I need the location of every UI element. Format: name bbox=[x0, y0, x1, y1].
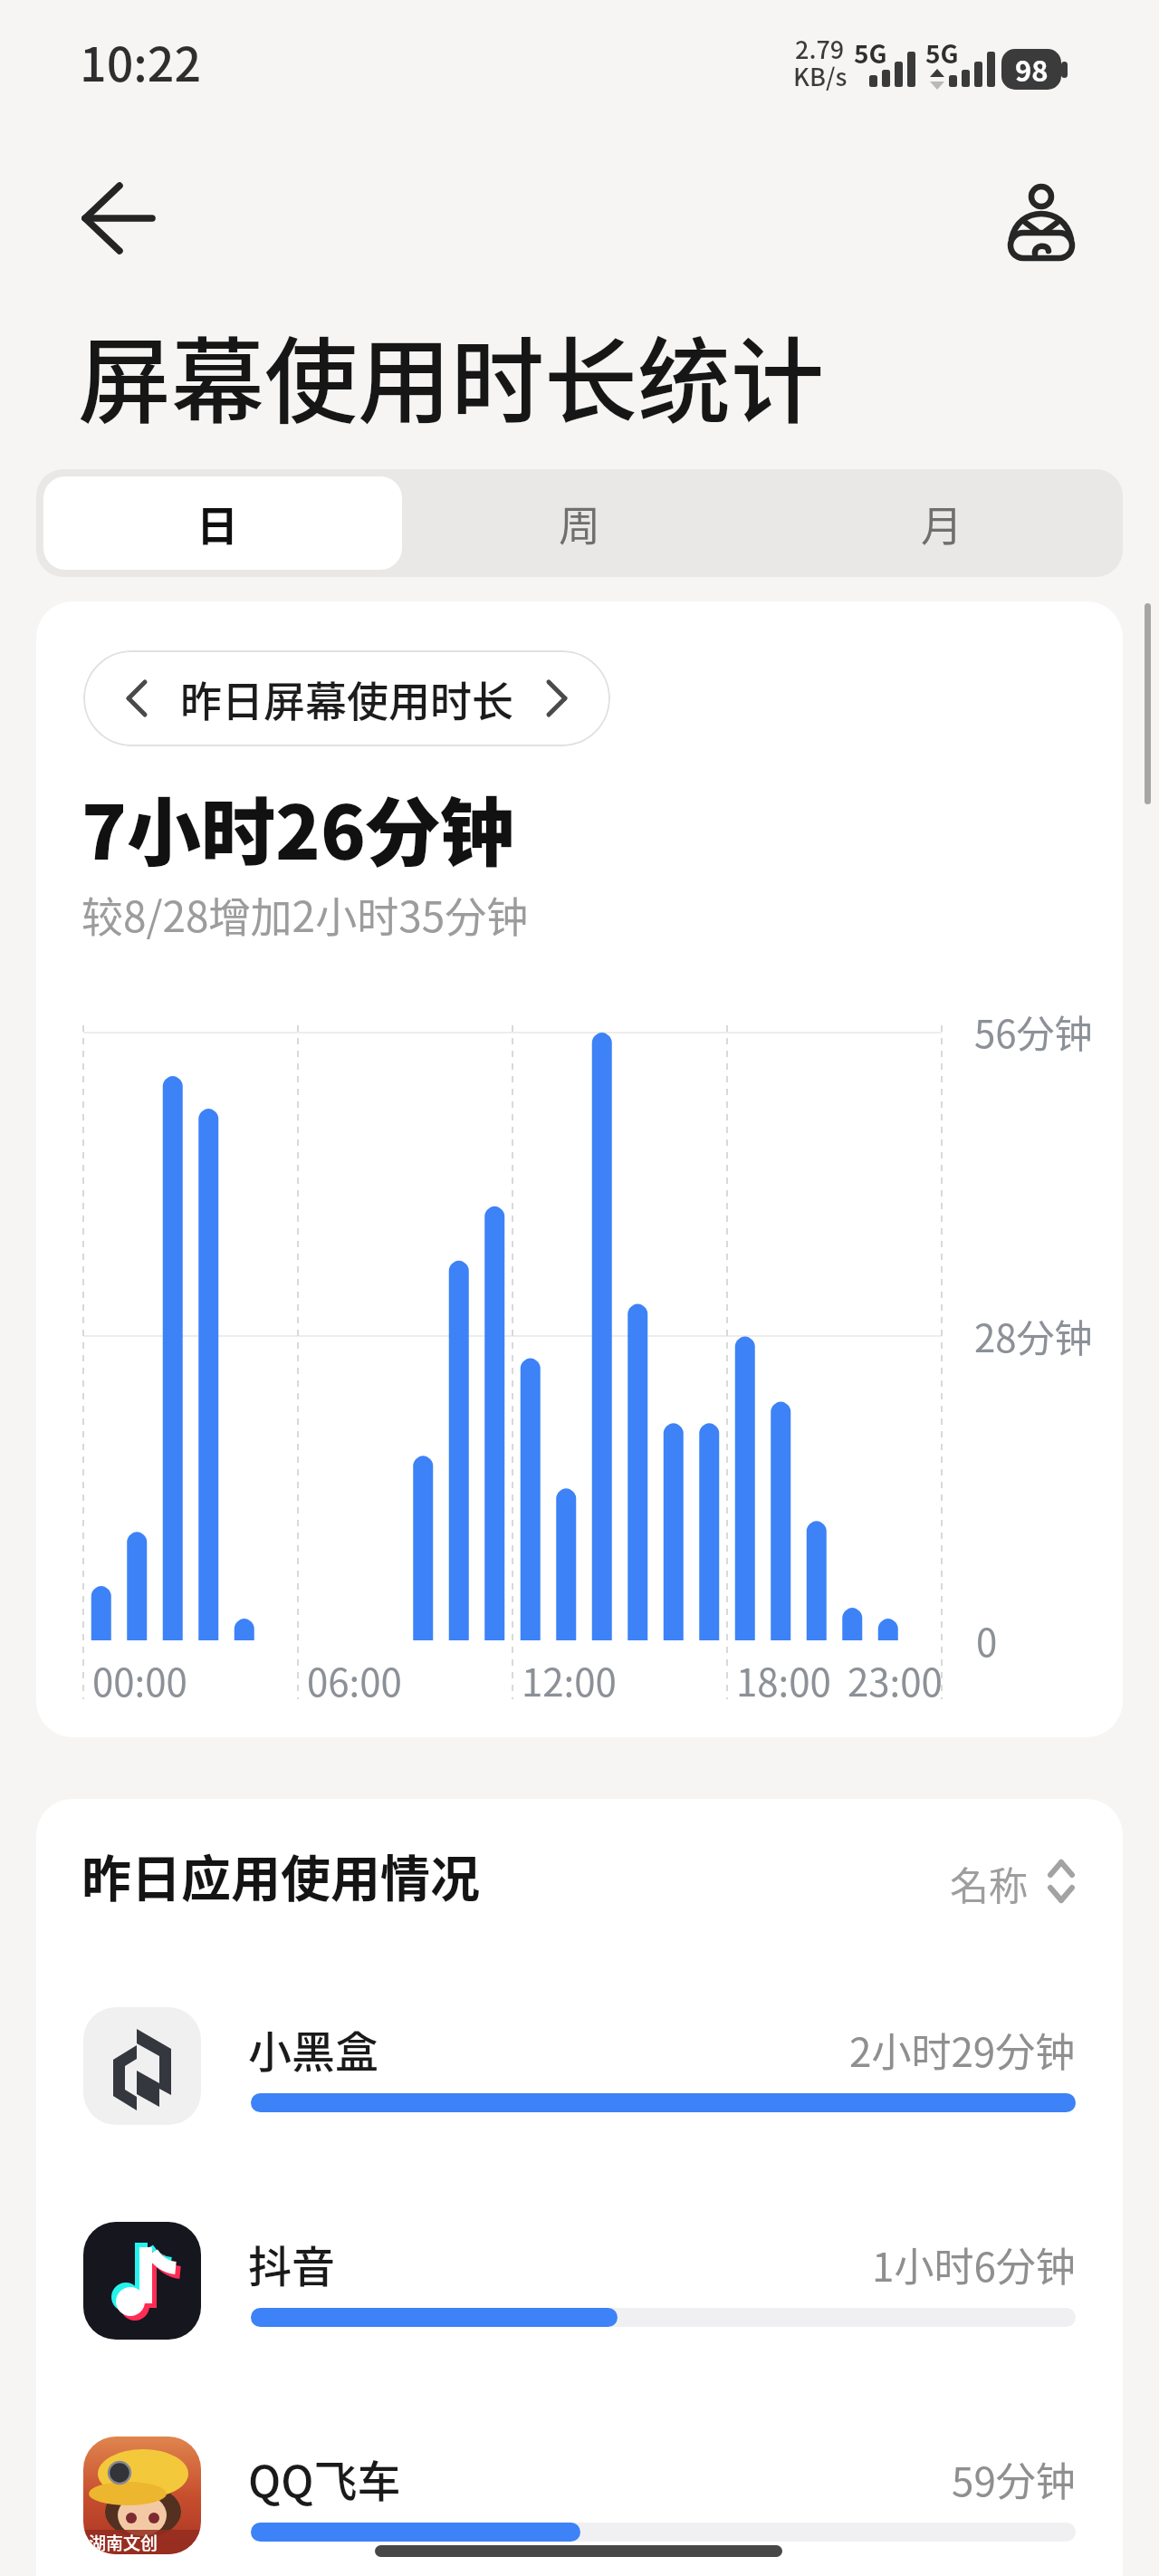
staticText: 00:00 bbox=[92, 1652, 187, 1707]
staticText: 小黑盒 bbox=[248, 2017, 379, 2081]
button[interactable]: 湖南文创 bbox=[36, 2437, 1123, 2576]
staticText: 5G bbox=[854, 34, 887, 72]
staticText: 12:00 bbox=[522, 1652, 617, 1707]
button[interactable]: 名称 bbox=[933, 1835, 1087, 1917]
button[interactable]: 日 bbox=[36, 469, 398, 577]
staticText: 59分钟 bbox=[952, 2450, 1076, 2508]
staticText: 98 bbox=[1015, 49, 1049, 90]
staticText: 较8/28增加2小时35分钟 bbox=[81, 884, 529, 945]
staticText: KB/s bbox=[793, 58, 848, 93]
staticText: 月 bbox=[921, 493, 963, 553]
staticText: 10:22 bbox=[80, 27, 202, 95]
staticText: 23:00 bbox=[848, 1652, 943, 1707]
button[interactable] bbox=[1000, 172, 1083, 266]
button[interactable]: 月 bbox=[761, 469, 1123, 577]
staticText: 湖南文创 bbox=[89, 2530, 158, 2554]
staticText: 06:00 bbox=[307, 1652, 402, 1707]
staticText: 名称 bbox=[950, 1855, 1028, 1911]
staticText: 1小时6分钟 bbox=[872, 2235, 1076, 2293]
button[interactable]: 昨日屏幕使用时长 bbox=[83, 650, 610, 746]
staticText: 周 bbox=[559, 493, 600, 553]
button[interactable] bbox=[72, 174, 172, 264]
staticText: 昨日应用使用情况 bbox=[81, 1839, 481, 1911]
staticText: 屏幕使用时长统计 bbox=[78, 308, 824, 443]
staticText: 日 bbox=[196, 493, 238, 553]
staticText: 56分钟 bbox=[974, 1004, 1093, 1059]
staticText: 28分钟 bbox=[974, 1308, 1093, 1363]
staticText: QQ飞车 bbox=[248, 2446, 401, 2510]
button[interactable]: 周 bbox=[398, 469, 761, 577]
staticText: 2.79 bbox=[795, 31, 845, 66]
button[interactable]: 小黑盒 bbox=[36, 2007, 1123, 2222]
staticText: 昨日屏幕使用时长 bbox=[180, 668, 513, 729]
staticText: 7小时26分钟 bbox=[81, 774, 514, 881]
button[interactable]: 抖音 bbox=[36, 2222, 1123, 2437]
staticText: 抖音 bbox=[248, 2232, 336, 2295]
staticText: 0 bbox=[976, 1612, 998, 1668]
staticText: 5G bbox=[925, 34, 959, 72]
staticText: 2小时29分钟 bbox=[849, 2021, 1076, 2079]
staticText: 18:00 bbox=[736, 1652, 831, 1707]
